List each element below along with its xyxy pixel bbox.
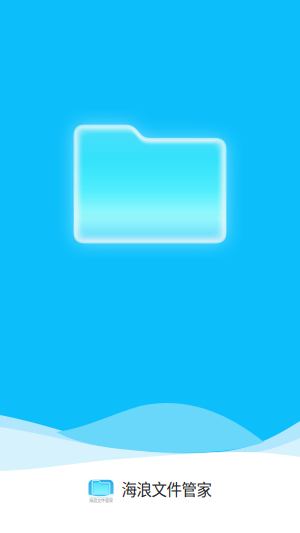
staticText: 海浪文件管家: [121, 478, 211, 500]
button[interactable]: 海浪文件管家: [88, 478, 211, 500]
staticText: 海浪文件管家: [89, 498, 113, 504]
